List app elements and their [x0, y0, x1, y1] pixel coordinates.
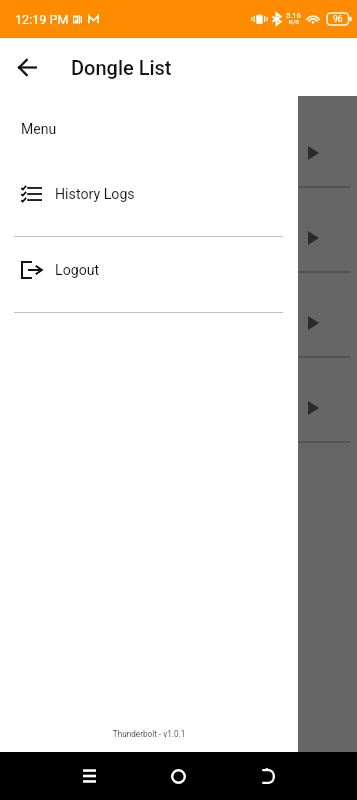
button[interactable]: Back — [7, 47, 47, 87]
staticText: 12:19 PM — [15, 12, 69, 27]
staticText: Menu — [21, 121, 57, 137]
staticText: Thunderbolt - v1.0.1 — [0, 729, 298, 739]
button[interactable]: Back — [244, 752, 292, 800]
staticText: K/S — [289, 18, 299, 25]
staticText: Dongle List — [71, 56, 172, 79]
staticText: Logout — [55, 262, 100, 279]
button[interactable]: History Logs — [0, 170, 298, 218]
button[interactable]: Home — [154, 752, 202, 800]
button[interactable]: Recent apps — [65, 752, 113, 800]
button[interactable]: Logout — [0, 246, 298, 294]
staticText: 96 — [333, 14, 343, 24]
staticText: History Logs — [55, 186, 135, 203]
staticText: 5.16 — [286, 11, 301, 20]
